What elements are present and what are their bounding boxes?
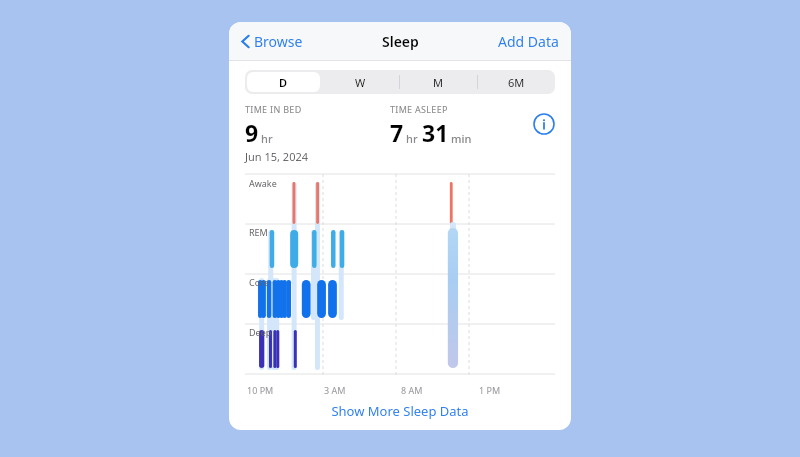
staticText: Jun 15, 2024 bbox=[245, 149, 309, 164]
staticText: Awake bbox=[249, 177, 277, 189]
staticText: W bbox=[355, 75, 366, 90]
staticText: TIME IN BED bbox=[245, 103, 302, 115]
staticText: 9 bbox=[245, 117, 259, 148]
staticText: hr bbox=[406, 131, 418, 146]
button[interactable]: M bbox=[399, 70, 477, 94]
staticText: 10 PM bbox=[247, 384, 274, 396]
button[interactable]: D bbox=[245, 70, 322, 94]
staticText: M bbox=[433, 75, 443, 90]
button[interactable]: 6M bbox=[477, 70, 555, 94]
staticText: Browse bbox=[254, 32, 303, 51]
staticText: Add Data bbox=[498, 32, 559, 51]
staticText: 6M bbox=[508, 75, 525, 90]
staticText: Core bbox=[249, 276, 269, 288]
staticText: Deep bbox=[249, 326, 272, 338]
staticText: min bbox=[451, 131, 472, 146]
staticText: 7 bbox=[390, 117, 404, 148]
staticText: 31 bbox=[422, 117, 449, 148]
staticText: Show More Sleep Data bbox=[331, 402, 469, 420]
staticText: Sleep bbox=[382, 32, 419, 51]
button[interactable]: Show More Sleep Data bbox=[319, 396, 481, 426]
staticText: 1 PM bbox=[479, 384, 501, 396]
staticText: 3 AM bbox=[324, 384, 346, 396]
staticText: hr bbox=[261, 131, 273, 146]
staticText: D bbox=[279, 75, 288, 90]
staticText: REM bbox=[249, 226, 268, 238]
staticText: TIME ASLEEP bbox=[390, 103, 448, 115]
button[interactable]: Browse bbox=[238, 28, 306, 55]
staticText: 8 AM bbox=[401, 384, 423, 396]
button[interactable]: Add Data bbox=[495, 28, 562, 55]
button[interactable]: W bbox=[322, 70, 399, 94]
button[interactable]: Information bbox=[533, 113, 555, 135]
